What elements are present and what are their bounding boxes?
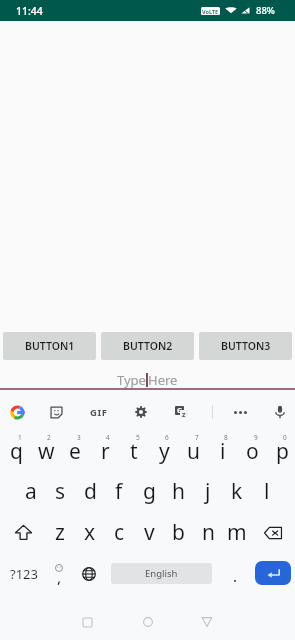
button[interactable]: p: [267, 431, 295, 472]
button[interactable]: v: [134, 512, 164, 553]
staticText: 3: [77, 433, 81, 442]
button[interactable]: Comma and emoji: [44, 553, 74, 594]
staticText: 7: [195, 433, 199, 442]
button[interactable]: j: [193, 471, 223, 512]
staticText: e: [69, 437, 81, 466]
staticText: .: [233, 566, 238, 586]
staticText: v: [144, 518, 155, 547]
staticText: 5: [136, 433, 140, 442]
staticText: s: [55, 477, 66, 506]
button[interactable]: b: [163, 512, 193, 553]
staticText: BUTTON1: [25, 339, 75, 353]
button[interactable]: r: [90, 431, 120, 472]
button[interactable]: k: [222, 471, 252, 512]
staticText: 9: [254, 433, 258, 442]
button[interactable]: l: [252, 471, 282, 512]
button[interactable]: a: [16, 471, 46, 512]
staticText: GIF: [90, 406, 108, 419]
staticText: i: [220, 437, 226, 466]
staticText: l: [264, 477, 270, 506]
staticText: o: [246, 437, 259, 466]
staticText: English: [145, 567, 178, 580]
staticText: 0: [283, 433, 287, 442]
button[interactable]: y: [149, 431, 179, 472]
staticText: u: [187, 437, 200, 466]
button[interactable]: t: [119, 431, 149, 472]
button[interactable]: Shift: [1, 512, 45, 553]
staticText: BUTTON3: [221, 339, 271, 353]
button[interactable]: Change language: [74, 553, 104, 594]
button[interactable]: x: [75, 512, 105, 553]
staticText: y: [159, 437, 170, 466]
button[interactable]: BUTTON3: [199, 332, 292, 360]
staticText: q: [10, 437, 23, 466]
staticText: 11:44: [16, 4, 43, 18]
button[interactable]: GIF: [82, 396, 116, 428]
button[interactable]: w: [31, 431, 61, 472]
staticText: G: [177, 406, 183, 415]
button[interactable]: z: [45, 512, 75, 553]
button[interactable]: Home: [133, 607, 163, 637]
button[interactable]: Period: [221, 553, 249, 594]
button[interactable]: g: [134, 471, 164, 512]
button[interactable]: ?123: [0, 553, 48, 594]
button[interactable]: Voice input: [263, 396, 295, 428]
staticText: ?123: [10, 565, 38, 583]
button[interactable]: i: [208, 431, 238, 472]
staticText: Here: [148, 371, 178, 389]
staticText: BUTTON2: [123, 339, 173, 353]
button[interactable]: q: [1, 431, 31, 472]
staticText: g: [143, 477, 156, 506]
button[interactable]: Stickers: [39, 396, 73, 428]
staticText: t: [130, 437, 138, 466]
staticText: Type: [117, 371, 146, 389]
button[interactable]: Enter: [255, 561, 291, 585]
staticText: h: [172, 477, 185, 506]
staticText: k: [231, 477, 243, 506]
staticText: 6: [165, 433, 169, 442]
button[interactable]: Google search: [0, 396, 34, 428]
staticText: a: [25, 477, 37, 506]
staticText: f: [115, 477, 123, 506]
staticText: 2: [47, 433, 51, 442]
button[interactable]: d: [75, 471, 105, 512]
button[interactable]: u: [178, 431, 208, 472]
staticText: z: [55, 518, 65, 547]
button[interactable]: Settings: [124, 396, 158, 428]
button[interactable]: BUTTON2: [101, 332, 194, 360]
button[interactable]: Recent apps: [72, 607, 102, 637]
button[interactable]: o: [237, 431, 267, 472]
button[interactable]: s: [45, 471, 75, 512]
button[interactable]: c: [104, 512, 134, 553]
button[interactable]: n: [193, 512, 223, 553]
staticText: 8: [224, 433, 228, 442]
staticText: 4: [106, 433, 110, 442]
button[interactable]: BUTTON1: [3, 332, 96, 360]
button[interactable]: e: [60, 431, 90, 472]
staticText: d: [84, 477, 97, 506]
staticText: 1: [18, 433, 22, 442]
staticText: j: [205, 477, 211, 506]
button[interactable]: m: [222, 512, 252, 553]
button[interactable]: h: [163, 471, 193, 512]
button[interactable]: Type: [0, 371, 295, 389]
staticText: z: [182, 410, 186, 418]
staticText: m: [227, 518, 247, 547]
staticText: n: [202, 518, 215, 547]
button[interactable]: Backspace: [251, 512, 295, 553]
staticText: c: [114, 518, 125, 547]
staticText: VoLTE: [202, 8, 219, 15]
button[interactable]: Back: [192, 607, 222, 637]
staticText: w: [38, 437, 55, 466]
button[interactable]: English: [111, 563, 212, 584]
staticText: x: [84, 518, 96, 547]
staticText: p: [276, 437, 289, 466]
staticText: r: [101, 437, 110, 466]
button[interactable]: Translate: [164, 396, 198, 428]
button[interactable]: More options: [223, 396, 257, 428]
staticText: ,: [57, 567, 62, 587]
staticText: 88%: [256, 4, 275, 17]
button[interactable]: f: [104, 471, 134, 512]
staticText: b: [172, 518, 185, 547]
